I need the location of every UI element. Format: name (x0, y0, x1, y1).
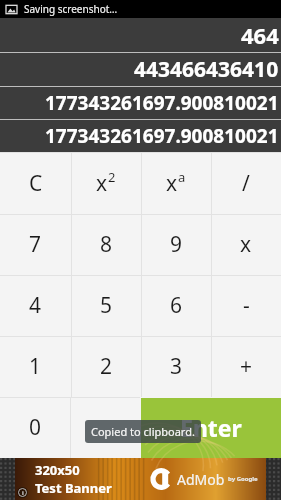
button[interactable]: 6 (141, 275, 211, 336)
button[interactable]: 177343261697.900810021 (0, 120, 281, 152)
staticText: 177343261697.900810021 (45, 90, 279, 116)
staticText: 6 (170, 291, 183, 320)
button[interactable]: 5 (71, 275, 141, 336)
button[interactable]: Empty key (70, 397, 140, 458)
staticText: 177343261697.900810021 (45, 123, 279, 149)
staticText: 464 (241, 20, 279, 50)
staticText: 3 (170, 352, 183, 381)
staticText: 2 (108, 168, 116, 186)
button[interactable]: x (71, 152, 141, 214)
staticText: Saving screenshot… (24, 2, 118, 16)
staticText: by Google (228, 475, 258, 483)
staticText: Test Banner (35, 479, 112, 497)
staticText: / (242, 169, 250, 198)
button[interactable]: 9 (141, 214, 211, 275)
staticText: 9 (170, 230, 183, 259)
staticText: 443466436410 (134, 55, 279, 84)
button[interactable]: 2 (71, 336, 141, 397)
staticText: 8 (100, 230, 113, 259)
button[interactable]: 4 (0, 275, 71, 336)
staticText: 7 (29, 230, 42, 259)
button[interactable]: 1 (0, 336, 71, 397)
button[interactable]: + (211, 336, 281, 397)
button[interactable]: - (211, 275, 281, 336)
staticText: x (96, 169, 108, 198)
button[interactable]: 0 (0, 397, 70, 458)
staticText: C (29, 169, 43, 198)
staticText: x (166, 169, 178, 198)
button[interactable]: / (211, 152, 281, 214)
staticText: AdMob (177, 470, 225, 489)
button[interactable]: x (141, 152, 211, 214)
staticText: 1 (29, 352, 42, 381)
staticText: Enter (180, 412, 242, 443)
button[interactable]: Advertisement banner (0, 458, 281, 500)
staticText: a (178, 168, 186, 186)
button[interactable]: 443466436410 (0, 53, 281, 86)
button[interactable]: C (0, 152, 71, 214)
staticText: Copied to clipboard. (91, 424, 195, 439)
button[interactable]: 7 (0, 214, 71, 275)
button[interactable]: 8 (71, 214, 141, 275)
staticText: + (240, 352, 253, 381)
button[interactable]: x (211, 214, 281, 275)
staticText: i (22, 489, 24, 497)
staticText: - (243, 291, 250, 320)
button[interactable]: Enter (140, 397, 281, 458)
staticText: 5 (100, 291, 113, 320)
staticText: 0 (29, 413, 42, 442)
staticText: x (240, 230, 252, 259)
staticText: 320x50 (35, 461, 80, 479)
staticText: 4 (29, 291, 42, 320)
button[interactable]: 464 (0, 18, 281, 52)
button[interactable]: 177343261697.900810021 (0, 87, 281, 119)
staticText: 2 (100, 352, 113, 381)
button[interactable]: 3 (141, 336, 211, 397)
